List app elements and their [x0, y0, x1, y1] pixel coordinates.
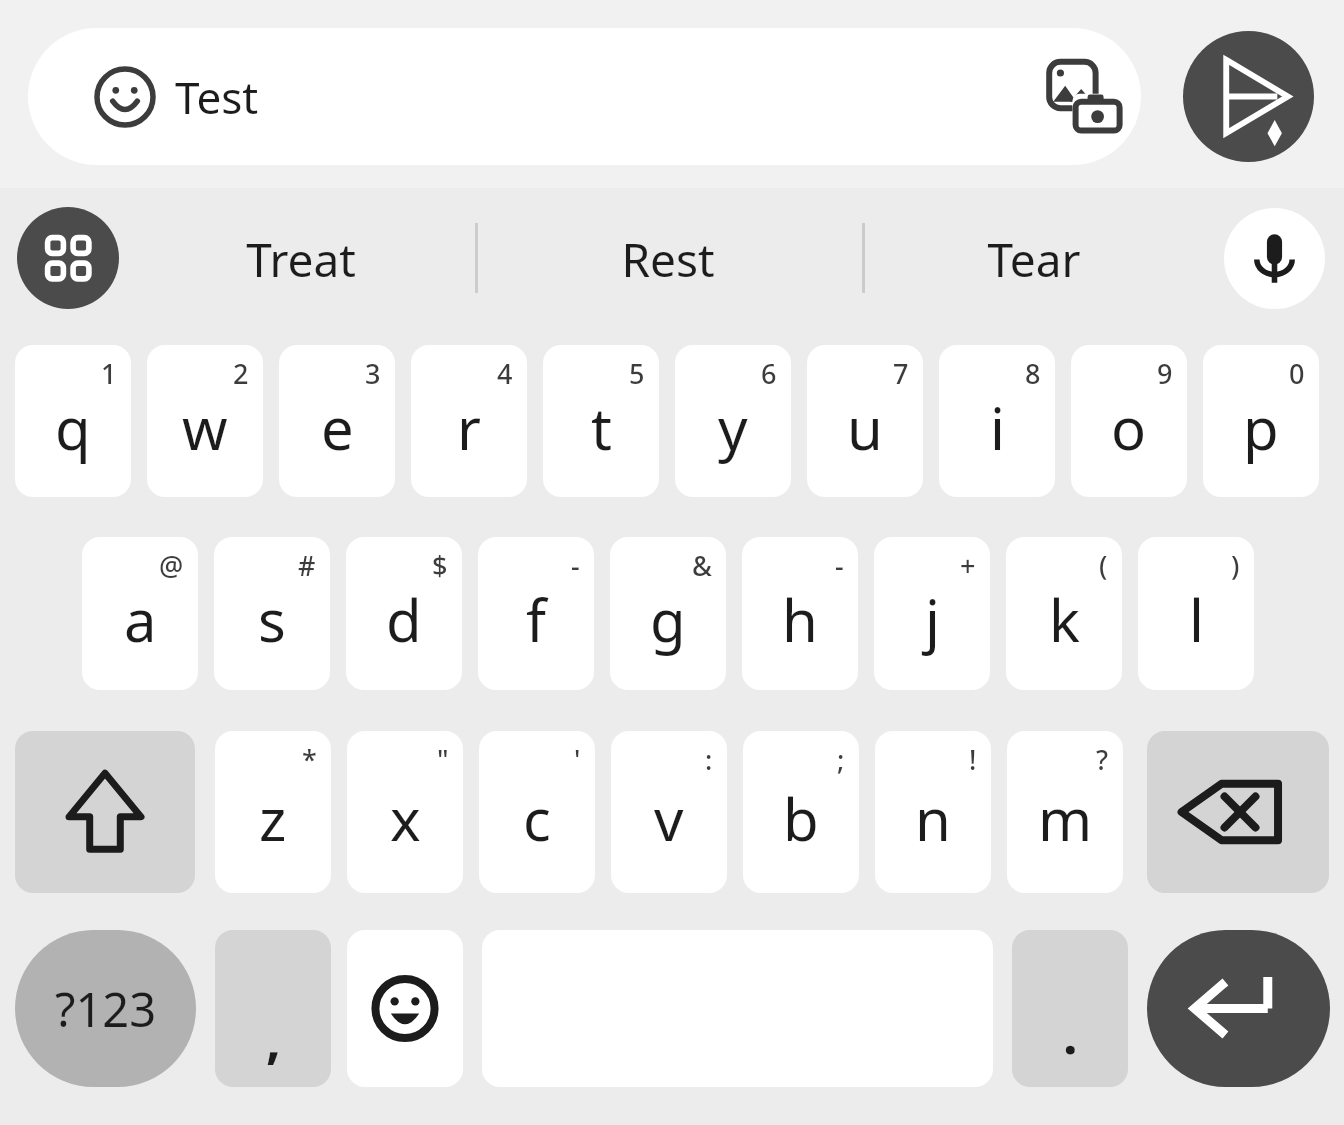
staticText: ': [574, 741, 581, 778]
staticText: g: [650, 580, 686, 659]
staticText: h: [782, 580, 818, 659]
staticText: k: [1049, 580, 1080, 659]
staticText: 2: [233, 355, 249, 392]
staticText: @: [159, 547, 184, 584]
staticText: 3: [365, 355, 381, 392]
staticText: .: [1063, 998, 1078, 1069]
staticText: s: [258, 580, 286, 659]
staticText: v: [654, 779, 684, 858]
button[interactable]: .: [1012, 930, 1128, 1087]
button[interactable]: f: [478, 537, 594, 690]
staticText: ): [1231, 547, 1240, 584]
staticText: &: [692, 547, 712, 584]
staticText: -: [571, 547, 580, 584]
staticText: 1: [101, 355, 117, 392]
staticText: $: [432, 547, 448, 584]
staticText: f: [526, 580, 546, 659]
staticText: b: [783, 779, 819, 858]
button[interactable]: w: [147, 345, 263, 497]
staticText: a: [124, 580, 157, 659]
button[interactable]: j: [874, 537, 990, 690]
button[interactable]: h: [742, 537, 858, 690]
button[interactable]: ,: [215, 930, 331, 1087]
staticText: (: [1099, 547, 1108, 584]
staticText: q: [55, 388, 91, 467]
button[interactable]: Emoji keyboard: [347, 930, 463, 1087]
staticText: j: [925, 580, 940, 659]
staticText: 4: [497, 355, 513, 392]
button[interactable]: g: [610, 537, 726, 690]
button[interactable]: y: [675, 345, 791, 497]
other: Emoji: [94, 66, 156, 128]
staticText: +: [960, 547, 976, 584]
staticText: 8: [1025, 355, 1041, 392]
button[interactable]: p: [1203, 345, 1319, 497]
button[interactable]: Voice input: [1224, 208, 1325, 309]
staticText: :: [705, 741, 713, 778]
staticText: -: [835, 547, 844, 584]
button[interactable]: r: [411, 345, 527, 497]
staticText: #: [298, 547, 316, 584]
staticText: c: [523, 779, 551, 858]
staticText: ?123: [55, 977, 157, 1041]
staticText: p: [1243, 388, 1279, 467]
button[interactable]: Shift: [15, 731, 195, 893]
button[interactable]: Send: [1183, 31, 1314, 162]
staticText: ": [437, 741, 449, 778]
button[interactable]: ?123: [15, 930, 196, 1087]
staticText: 5: [629, 355, 645, 392]
staticText: ;: [837, 741, 845, 778]
button[interactable]: i: [939, 345, 1055, 497]
staticText: Treat: [246, 228, 356, 291]
staticText: *: [302, 741, 317, 778]
staticText: n: [915, 779, 951, 858]
button[interactable]: b: [743, 731, 859, 893]
button[interactable]: e: [279, 345, 395, 497]
staticText: e: [321, 388, 354, 467]
button[interactable]: u: [807, 345, 923, 497]
staticText: Rest: [621, 228, 715, 291]
button[interactable]: Treat: [141, 188, 461, 330]
staticText: x: [390, 779, 421, 858]
button[interactable]: o: [1071, 345, 1187, 497]
staticText: 6: [761, 355, 777, 392]
button[interactable]: Rest: [508, 188, 828, 330]
button[interactable]: t: [543, 345, 659, 497]
button[interactable]: Emoji: [28, 28, 1141, 165]
button[interactable]: n: [875, 731, 991, 893]
button[interactable]: c: [479, 731, 595, 893]
staticText: ,: [266, 1002, 281, 1073]
staticText: r: [457, 388, 481, 467]
staticText: l: [1189, 580, 1204, 659]
staticText: d: [386, 580, 422, 659]
other: Insert image: [1046, 57, 1126, 137]
button[interactable]: m: [1007, 731, 1123, 893]
button[interactable]: Enter: [1147, 930, 1330, 1087]
button[interactable]: Toolbar: [17, 207, 119, 309]
button[interactable]: a: [82, 537, 198, 690]
staticText: 0: [1289, 355, 1305, 392]
staticText: w: [182, 388, 228, 467]
button[interactable]: k: [1006, 537, 1122, 690]
button[interactable]: Backspace: [1147, 731, 1329, 893]
button[interactable]: s: [214, 537, 330, 690]
staticText: ?: [1096, 741, 1109, 778]
staticText: o: [1111, 388, 1147, 467]
button[interactable]: v: [611, 731, 727, 893]
staticText: z: [259, 779, 287, 858]
staticText: Tear: [987, 228, 1081, 291]
staticText: 7: [893, 355, 909, 392]
button[interactable]: d: [346, 537, 462, 690]
button[interactable]: l: [1138, 537, 1254, 690]
button[interactable]: z: [215, 731, 331, 893]
staticText: m: [1038, 779, 1093, 858]
staticText: Test: [175, 67, 259, 127]
button[interactable]: q: [15, 345, 131, 497]
staticText: 9: [1157, 355, 1173, 392]
staticText: t: [591, 388, 612, 467]
button[interactable]: Tear: [874, 188, 1194, 330]
staticText: !: [969, 741, 977, 778]
button[interactable]: x: [347, 731, 463, 893]
staticText: i: [990, 388, 1005, 467]
